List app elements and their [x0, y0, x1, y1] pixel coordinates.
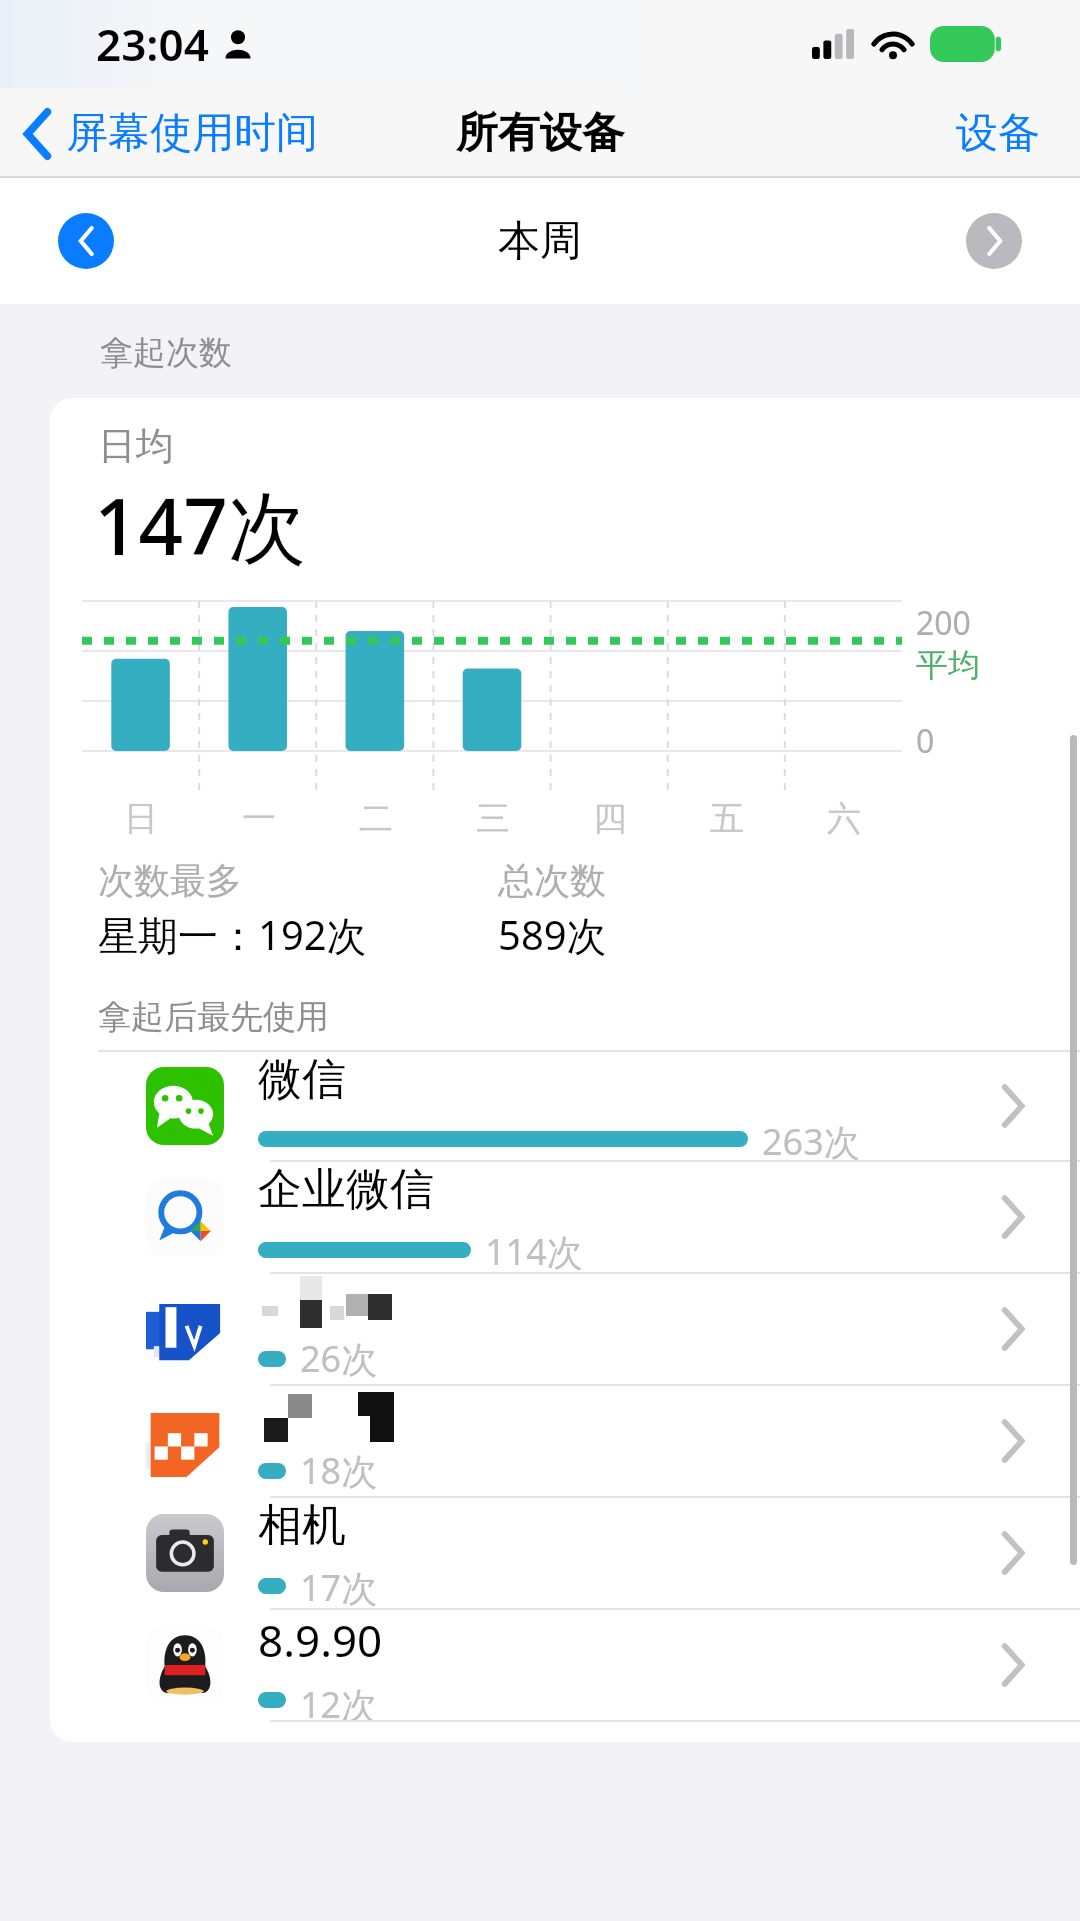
staticText: 日均: [98, 422, 174, 470]
button[interactable]: 设备: [916, 97, 1080, 170]
staticText: 589次: [498, 907, 607, 962]
staticText: 星期一：192次: [98, 907, 367, 962]
button[interactable]: Next week: [966, 213, 1022, 269]
button[interactable]: 18次: [50, 1386, 1080, 1496]
staticText: 23:04: [96, 14, 209, 74]
staticText: 平均: [916, 645, 980, 685]
staticText: 147次: [94, 472, 306, 579]
staticText: 次数最多: [98, 858, 242, 903]
staticText: 拿起次数: [100, 332, 232, 374]
staticText: 六: [827, 797, 861, 840]
staticText: 17次: [300, 1563, 378, 1608]
button[interactable]: 26次: [50, 1274, 1080, 1384]
staticText: 拿起后最先使用: [98, 996, 329, 1038]
staticText: 企业微信: [258, 1162, 434, 1217]
staticText: 屏幕使用时间: [66, 107, 318, 160]
staticText: 总次数: [498, 858, 606, 903]
staticText: 二: [359, 797, 393, 840]
staticText: 26次: [300, 1334, 378, 1383]
staticText: 设备: [956, 107, 1040, 160]
staticText: 263次: [762, 1117, 860, 1160]
staticText: 三: [476, 797, 510, 840]
staticText: 200: [916, 601, 971, 645]
staticText: 四: [593, 797, 627, 840]
button[interactable]: 屏幕使用时间: [0, 99, 330, 168]
staticText: 日: [124, 797, 158, 840]
staticText: 微信: [258, 1052, 346, 1107]
staticText: 所有设备: [456, 107, 624, 160]
staticText: 18次: [300, 1446, 378, 1495]
button[interactable]: 企业微信: [50, 1162, 1080, 1272]
button[interactable]: 微信: [50, 1052, 1080, 1160]
button[interactable]: 相机: [50, 1498, 1080, 1608]
staticText: 相机: [258, 1498, 346, 1553]
button[interactable]: 8.9.90: [50, 1610, 1080, 1720]
staticText: 一: [242, 797, 276, 840]
staticText: 0: [916, 719, 935, 763]
staticText: 12次: [300, 1680, 378, 1720]
button[interactable]: Previous week: [58, 213, 114, 269]
staticText: 五: [710, 797, 744, 840]
staticText: 本周: [498, 215, 582, 268]
staticText: 8.9.90: [258, 1610, 383, 1670]
staticText: 114次: [485, 1227, 583, 1272]
